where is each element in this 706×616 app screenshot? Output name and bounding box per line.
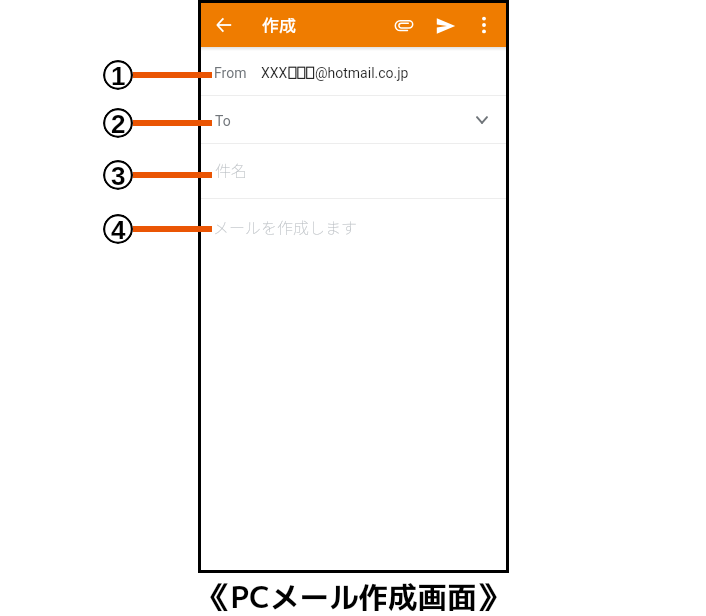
staticText: 2 (111, 109, 126, 138)
staticText: 4 (111, 215, 126, 244)
button[interactable]: From (201, 47, 506, 95)
button[interactable]: More options (469, 10, 499, 40)
staticText: XXX (261, 65, 288, 81)
button[interactable]: To (201, 95, 506, 143)
button[interactable]: Back (207, 8, 241, 42)
staticText: メールを作成します (213, 215, 358, 238)
staticText: From (214, 65, 247, 81)
staticText: 作成 (262, 14, 296, 39)
button[interactable]: Show recipient fields (465, 103, 499, 137)
button[interactable]: メールを作成します (201, 198, 506, 570)
staticText: @hotmail.co.jp (315, 65, 409, 81)
staticText: 1 (111, 61, 126, 90)
staticText: 《PCメール作成画面》 (201, 576, 506, 616)
button[interactable]: Attach file (387, 9, 421, 43)
button[interactable]: 件名 (201, 143, 506, 198)
button[interactable]: Send (429, 9, 463, 43)
staticText: To (215, 113, 231, 129)
staticText: 3 (111, 161, 126, 190)
staticText: 件名 (215, 158, 248, 181)
